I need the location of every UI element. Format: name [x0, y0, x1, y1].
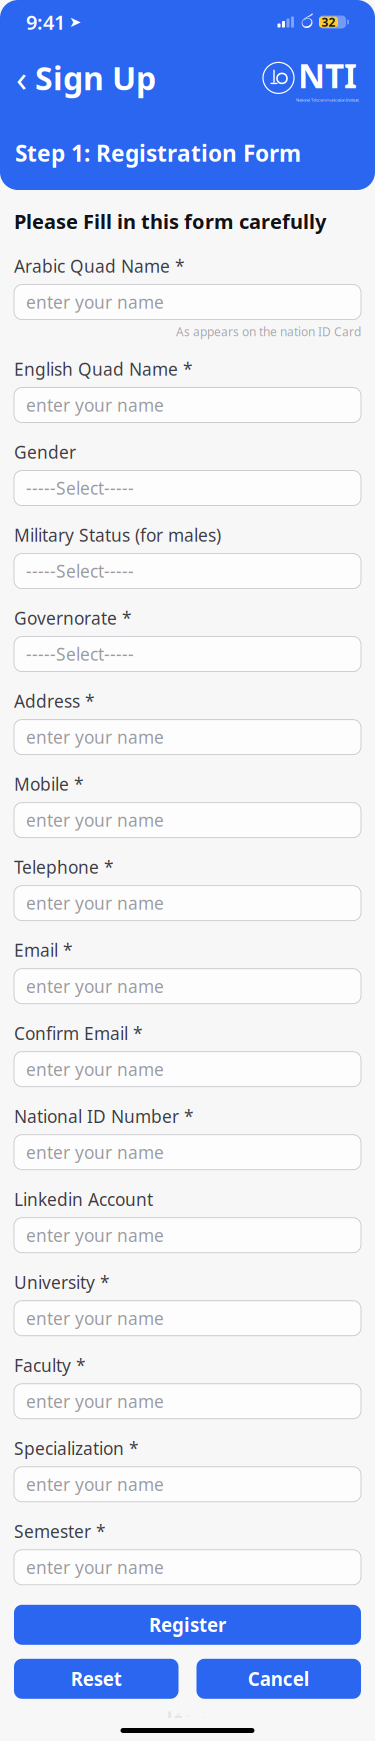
staticText: enter your name	[26, 809, 164, 832]
button[interactable]: -----Select-----	[14, 637, 361, 672]
staticText: enter your name	[26, 726, 164, 749]
staticText: 32	[321, 14, 335, 30]
staticText: Arabic Quad Name *	[14, 255, 185, 278]
staticText: Reset	[71, 1666, 122, 1691]
staticText: Faculty *	[14, 1354, 86, 1377]
staticText: Step 1: Registration Form	[15, 138, 301, 168]
button[interactable]: enter your name	[14, 387, 361, 422]
staticText: ‹	[16, 54, 27, 102]
staticText: Military Status (for males)	[14, 523, 221, 546]
staticText: -----Select-----	[26, 560, 134, 583]
staticText: -----Select-----	[26, 643, 134, 666]
staticText: Cancel	[248, 1666, 310, 1691]
staticText: Address *	[14, 690, 95, 713]
staticText: enter your name	[26, 1473, 164, 1496]
staticText: Telephone *	[14, 856, 114, 879]
staticText: National Telecommunication Institute	[296, 97, 359, 103]
button[interactable]: enter your name	[14, 1135, 361, 1170]
staticText: 9:41	[26, 9, 65, 35]
button[interactable]: -----Select-----	[14, 554, 361, 589]
staticText: ➤	[69, 14, 81, 30]
staticText: -----Select-----	[26, 476, 134, 499]
staticText: English Quad Name *	[14, 357, 193, 380]
button[interactable]: enter your name	[14, 1384, 361, 1419]
staticText: مستقل	[158, 1709, 217, 1727]
staticText: Please Fill in this form carefully	[14, 208, 326, 235]
staticText: enter your name	[26, 1556, 164, 1579]
button[interactable]: Register	[14, 1605, 361, 1645]
button[interactable]: enter your name	[14, 1467, 361, 1502]
button[interactable]: enter your name	[14, 1218, 361, 1253]
staticText: enter your name	[26, 1390, 164, 1413]
staticText: Governorate *	[14, 607, 132, 630]
button[interactable]: enter your name	[14, 720, 361, 755]
staticText: enter your name	[26, 291, 164, 314]
staticText: enter your name	[26, 892, 164, 915]
staticText: University *	[14, 1271, 110, 1294]
staticText: Mobile *	[14, 773, 84, 796]
button[interactable]: Cancel	[196, 1659, 361, 1699]
staticText: Linkedin Account	[14, 1188, 153, 1211]
staticText: enter your name	[26, 975, 164, 998]
button[interactable]: enter your name	[14, 285, 361, 320]
staticText: Specialization *	[14, 1437, 139, 1460]
staticText: ෮	[301, 12, 313, 32]
button[interactable]: -----Select-----	[14, 470, 361, 505]
staticText: enter your name	[26, 1224, 164, 1247]
button[interactable]: enter your name	[14, 1550, 361, 1585]
staticText: National ID Number *	[14, 1105, 194, 1128]
button[interactable]: enter your name	[14, 803, 361, 838]
staticText: Gender	[14, 440, 76, 463]
staticText: NTI	[298, 53, 357, 97]
staticText: enter your name	[26, 1141, 164, 1164]
button[interactable]: enter your name	[14, 886, 361, 921]
button[interactable]: Reset	[14, 1659, 178, 1699]
button[interactable]: NTI home	[262, 53, 359, 103]
staticText: Confirm Email *	[14, 1022, 143, 1045]
button[interactable]: ‹	[16, 50, 156, 106]
staticText: mostaql.com	[159, 1727, 216, 1739]
staticText: Email *	[14, 939, 73, 962]
button[interactable]: enter your name	[14, 969, 361, 1004]
button[interactable]: enter your name	[14, 1052, 361, 1087]
staticText: enter your name	[26, 1058, 164, 1081]
staticText: enter your name	[26, 393, 164, 416]
button[interactable]: enter your name	[14, 1301, 361, 1336]
staticText: Sign Up	[35, 57, 156, 99]
staticText: As appears on the nation ID Card	[176, 324, 361, 339]
staticText: Register	[149, 1612, 226, 1637]
staticText: Semester *	[14, 1520, 106, 1543]
staticText: enter your name	[26, 1307, 164, 1330]
